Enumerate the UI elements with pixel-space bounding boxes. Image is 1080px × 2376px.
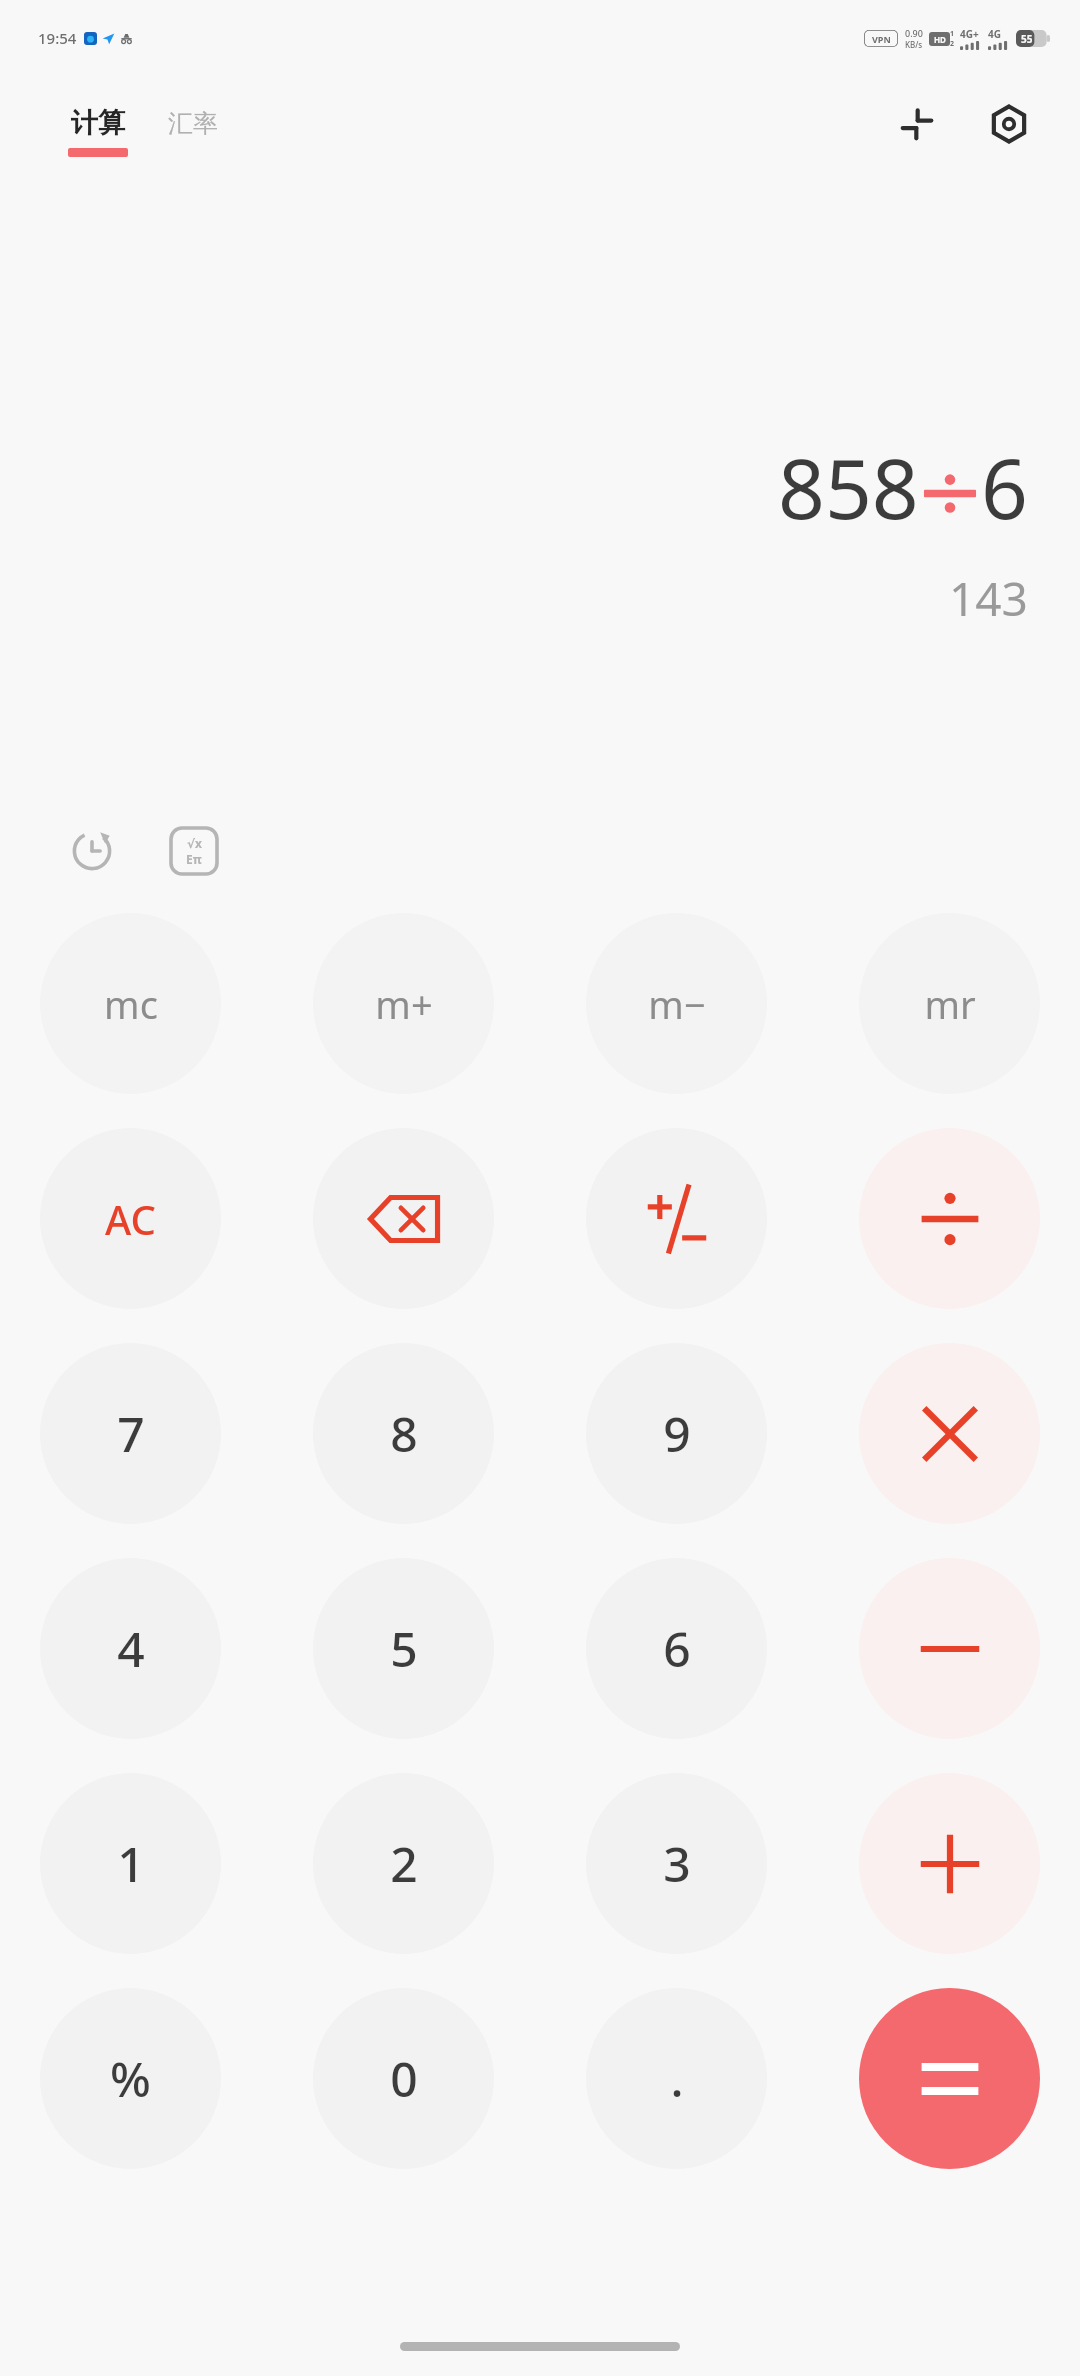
button[interactable]: Settings bbox=[978, 93, 1040, 155]
staticText: 9 bbox=[663, 1401, 691, 1466]
button[interactable]: m+ bbox=[313, 913, 494, 1094]
button[interactable]: 5 bbox=[313, 1558, 494, 1739]
staticText: 6 bbox=[981, 431, 1028, 543]
staticText: 1 bbox=[950, 29, 955, 39]
staticText: KB/s bbox=[905, 39, 923, 50]
button[interactable]: 汇率 bbox=[168, 108, 218, 156]
button[interactable]: Multiply bbox=[859, 1343, 1040, 1524]
staticText: √x bbox=[187, 835, 202, 851]
staticText: 55 bbox=[1021, 32, 1033, 46]
staticText: AC bbox=[105, 1192, 156, 1246]
staticText: m− bbox=[648, 978, 706, 1030]
staticText: 汇率 bbox=[168, 108, 218, 139]
button[interactable]: AC bbox=[40, 1128, 221, 1309]
staticText: 4G bbox=[988, 27, 1001, 41]
staticText: m+ bbox=[375, 978, 433, 1030]
button[interactable]: 9 bbox=[586, 1343, 767, 1524]
button[interactable]: . bbox=[586, 1988, 767, 2169]
staticText: 4G+ bbox=[960, 27, 979, 41]
button[interactable]: Divide bbox=[859, 1128, 1040, 1309]
staticText: mc bbox=[104, 978, 158, 1030]
staticText: 2 bbox=[390, 1831, 418, 1896]
button[interactable]: 7 bbox=[40, 1343, 221, 1524]
staticText: mr bbox=[924, 978, 976, 1030]
staticText: 3 bbox=[663, 1831, 691, 1896]
button[interactable]: 2 bbox=[313, 1773, 494, 1954]
staticText: 1 bbox=[117, 1831, 145, 1896]
staticText: 8 bbox=[390, 1401, 418, 1466]
button[interactable]: Plus minus bbox=[586, 1128, 767, 1309]
staticText: 5 bbox=[390, 1616, 418, 1681]
staticText: 4 bbox=[117, 1616, 145, 1681]
staticText: % bbox=[110, 2046, 151, 2111]
button[interactable]: Backspace bbox=[313, 1128, 494, 1309]
button[interactable]: Add bbox=[859, 1773, 1040, 1954]
button[interactable]: 6 bbox=[586, 1558, 767, 1739]
staticText: 2 bbox=[950, 39, 955, 49]
staticText: 0 bbox=[390, 2046, 418, 2111]
staticText: 7 bbox=[117, 1401, 145, 1466]
button[interactable]: 3 bbox=[586, 1773, 767, 1954]
staticText: 计算 bbox=[71, 106, 125, 140]
button[interactable]: mc bbox=[40, 913, 221, 1094]
button[interactable]: 0 bbox=[313, 1988, 494, 2169]
button[interactable]: % bbox=[40, 1988, 221, 2169]
staticText: . bbox=[670, 2046, 684, 2111]
staticText: VPN bbox=[872, 33, 891, 45]
button[interactable]: 4 bbox=[40, 1558, 221, 1739]
button[interactable]: 8 bbox=[313, 1343, 494, 1524]
staticText: 143 bbox=[949, 567, 1028, 630]
button[interactable]: Subtract bbox=[859, 1558, 1040, 1739]
button[interactable]: 计算 bbox=[68, 106, 128, 157]
button[interactable]: 1 bbox=[40, 1773, 221, 1954]
staticText: Eπ bbox=[186, 851, 202, 867]
button[interactable]: Collapse bbox=[886, 93, 948, 155]
button[interactable]: mr bbox=[859, 913, 1040, 1094]
button[interactable]: Equals bbox=[859, 1988, 1040, 2169]
staticText: 858 bbox=[778, 431, 919, 543]
button[interactable]: Scientific functions bbox=[160, 817, 228, 885]
staticText: HD bbox=[934, 34, 946, 45]
staticText: 6 bbox=[663, 1616, 691, 1681]
staticText: 0.90 bbox=[905, 27, 923, 39]
button[interactable]: m− bbox=[586, 913, 767, 1094]
button[interactable]: History bbox=[58, 817, 126, 885]
staticText: 19:54 bbox=[38, 28, 77, 48]
